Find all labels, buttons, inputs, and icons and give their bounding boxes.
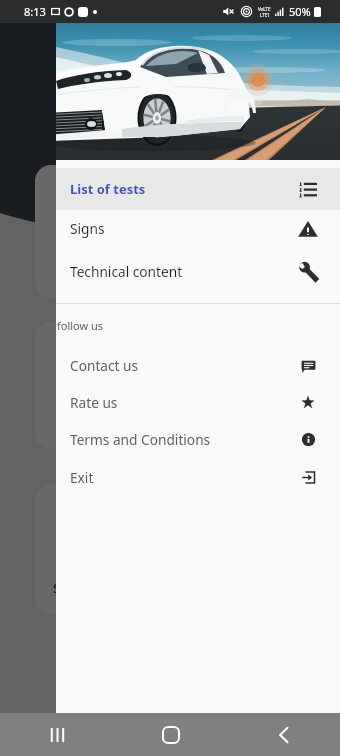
button[interactable]: Recent apps (0, 713, 114, 756)
other: Rate us (301, 395, 315, 409)
other: Signs (298, 219, 318, 239)
button[interactable]: Exit (56, 456, 340, 498)
button[interactable]: Back (227, 713, 340, 756)
staticText: Signs (70, 219, 105, 238)
button[interactable] (35, 165, 105, 298)
button[interactable]: Contact us (56, 344, 340, 386)
staticText: Technical content (70, 262, 183, 281)
other: Terms and Conditions (301, 432, 316, 447)
staticText: LTE1 (260, 12, 270, 18)
staticText: VoLTE (258, 6, 271, 12)
button[interactable]: Technical content (56, 250, 340, 292)
button[interactable]: Terms and Conditions (56, 418, 340, 460)
button[interactable]: S (35, 484, 105, 615)
button[interactable]: Home (114, 713, 227, 756)
button[interactable] (35, 321, 105, 449)
staticText: follow us (57, 318, 104, 333)
staticText: Contact us (70, 356, 139, 375)
staticText: S (53, 579, 61, 597)
staticText: Rate us (70, 393, 118, 412)
staticText: 50% (289, 4, 311, 19)
other: Technical content (298, 261, 318, 281)
staticText: Terms and Conditions (70, 430, 211, 449)
other: List (298, 179, 318, 199)
staticText: 8:13 (24, 4, 46, 19)
staticText: Exit (70, 468, 94, 487)
other: Contact us (301, 358, 316, 373)
other: Exit (301, 470, 316, 485)
button[interactable]: List of tests (56, 168, 340, 210)
button[interactable]: Signs (56, 208, 340, 249)
button[interactable]: Rate us (56, 381, 340, 423)
staticText: List of tests (70, 180, 146, 198)
